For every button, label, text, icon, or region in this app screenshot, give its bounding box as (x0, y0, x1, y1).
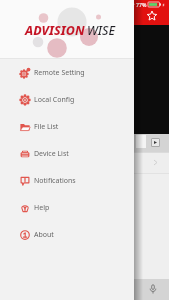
button[interactable]: Play (151, 138, 160, 147)
staticText: WISE (87, 22, 116, 39)
button[interactable]: Notifications (0, 167, 134, 194)
button[interactable]: Remote Setting (0, 59, 134, 86)
staticText: Notifications (34, 176, 76, 186)
button[interactable]: About (0, 221, 134, 248)
staticText: ADVISION (25, 22, 85, 39)
button[interactable]: Local Config (0, 86, 134, 113)
button[interactable]: Device List (0, 140, 134, 167)
staticText: Device List (34, 149, 69, 159)
staticText: Local Config (34, 95, 75, 105)
button[interactable]: Open (153, 160, 158, 165)
staticText: 77% (136, 1, 147, 8)
button[interactable]: File List (0, 113, 134, 140)
button[interactable]: Microphone (146, 282, 159, 295)
button[interactable]: Help (0, 194, 134, 221)
staticText: Remote Setting (34, 68, 85, 78)
staticText: About (34, 230, 54, 240)
staticText: Help (34, 203, 50, 213)
button[interactable]: Favourite (147, 11, 157, 21)
staticText: File List (34, 122, 59, 132)
